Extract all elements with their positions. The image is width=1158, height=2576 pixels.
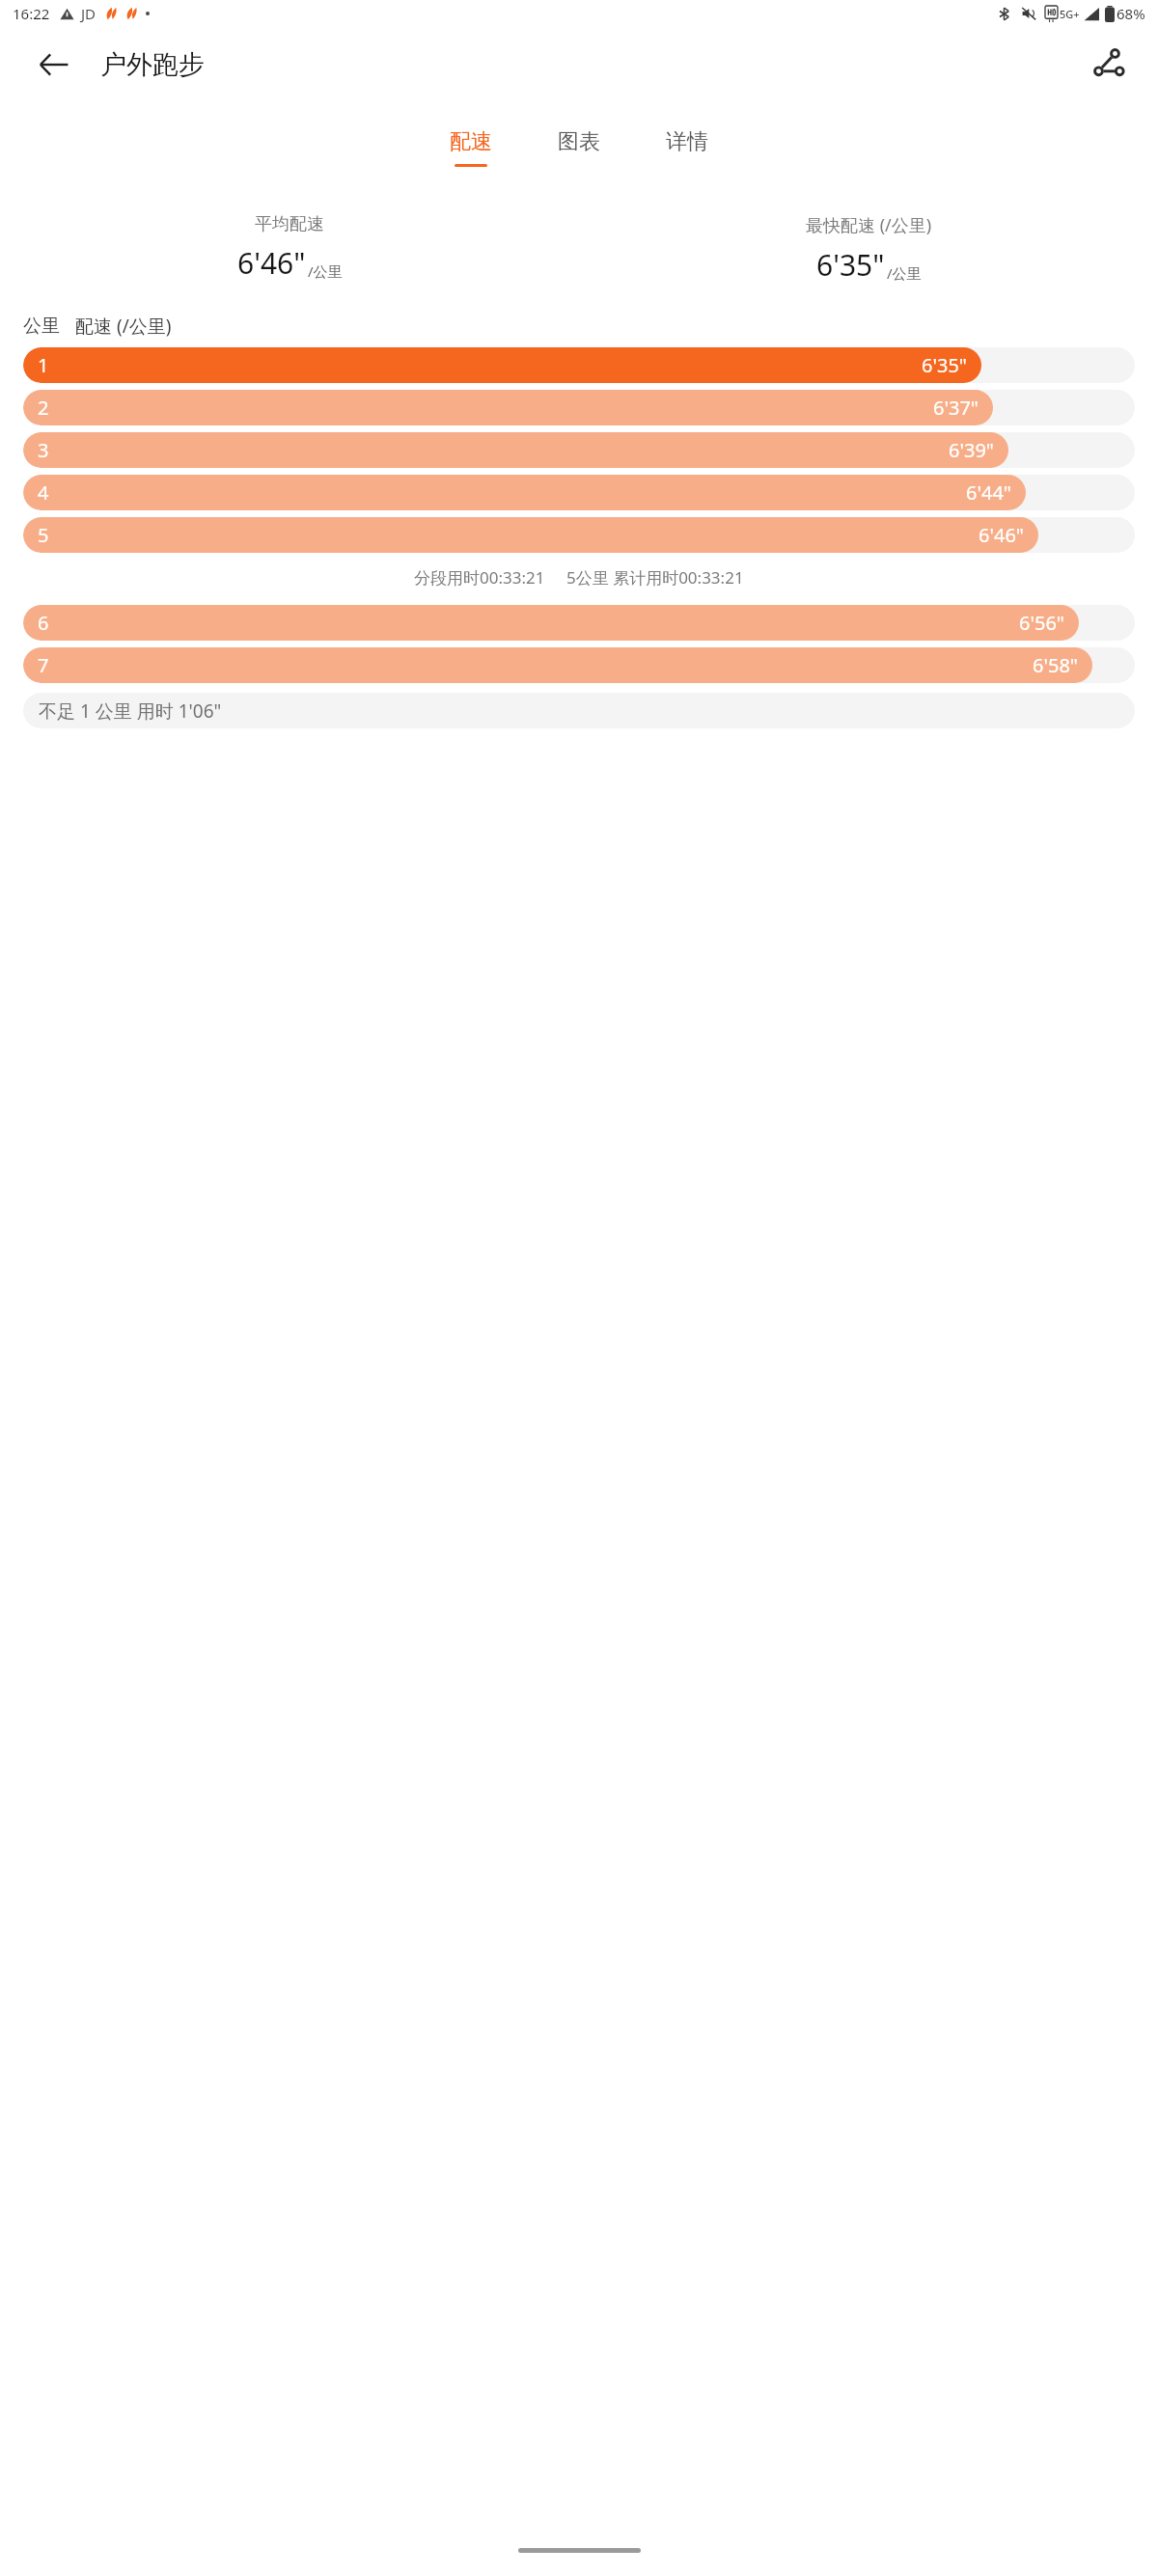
- staticText: /公里: [887, 263, 922, 283]
- staticText: 2: [38, 395, 49, 421]
- button[interactable]: 5: [23, 517, 1135, 553]
- staticText: 5公里 累计用时00:33:21: [566, 566, 744, 589]
- staticText: 户外跑步: [100, 48, 205, 81]
- staticText: 6'35": [816, 245, 885, 285]
- staticText: 配速 (/公里): [75, 314, 172, 339]
- staticText: 6'39": [949, 437, 994, 463]
- button[interactable]: Share: [1081, 38, 1135, 92]
- staticText: 6'46": [979, 522, 1024, 548]
- staticText: 5G+: [1060, 7, 1080, 21]
- staticText: 16:22: [13, 4, 50, 23]
- staticText: 6'58": [1033, 652, 1078, 678]
- button[interactable]: 详情: [652, 124, 722, 171]
- staticText: 68%: [1117, 4, 1145, 23]
- button[interactable]: 3: [23, 432, 1135, 468]
- staticText: 公里: [23, 315, 60, 338]
- staticText: 最快配速 (/公里): [806, 213, 932, 237]
- staticText: 6'44": [966, 480, 1011, 506]
- button[interactable]: 1: [23, 347, 1135, 383]
- button[interactable]: 4: [23, 475, 1135, 510]
- button[interactable]: 配速: [436, 124, 506, 171]
- staticText: 不足 1 公里 用时 1'06": [39, 699, 222, 724]
- staticText: 6'46": [237, 243, 306, 283]
- button[interactable]: 6: [23, 605, 1135, 641]
- button[interactable]: 2: [23, 390, 1135, 425]
- staticText: 5: [38, 522, 49, 548]
- staticText: 6'56": [1019, 610, 1064, 636]
- staticText: 7: [38, 652, 49, 678]
- staticText: 6'35": [922, 352, 967, 378]
- button[interactable]: Back: [27, 38, 81, 92]
- staticText: 详情: [666, 128, 708, 155]
- button[interactable]: 不足 1 公里 用时 1'06": [23, 693, 1135, 728]
- staticText: 分段用时00:33:21: [414, 566, 545, 589]
- staticText: 图表: [558, 128, 600, 155]
- staticText: 4: [38, 480, 49, 506]
- staticText: 6: [38, 610, 49, 636]
- button[interactable]: 图表: [544, 124, 614, 171]
- staticText: 3: [38, 437, 49, 463]
- staticText: 配速: [450, 128, 492, 155]
- staticText: 6'37": [933, 395, 979, 421]
- staticText: 平均配速: [255, 213, 324, 235]
- staticText: 1: [38, 352, 49, 378]
- button[interactable]: 7: [23, 647, 1135, 683]
- staticText: JD: [81, 4, 96, 23]
- staticText: /公里: [308, 261, 343, 281]
